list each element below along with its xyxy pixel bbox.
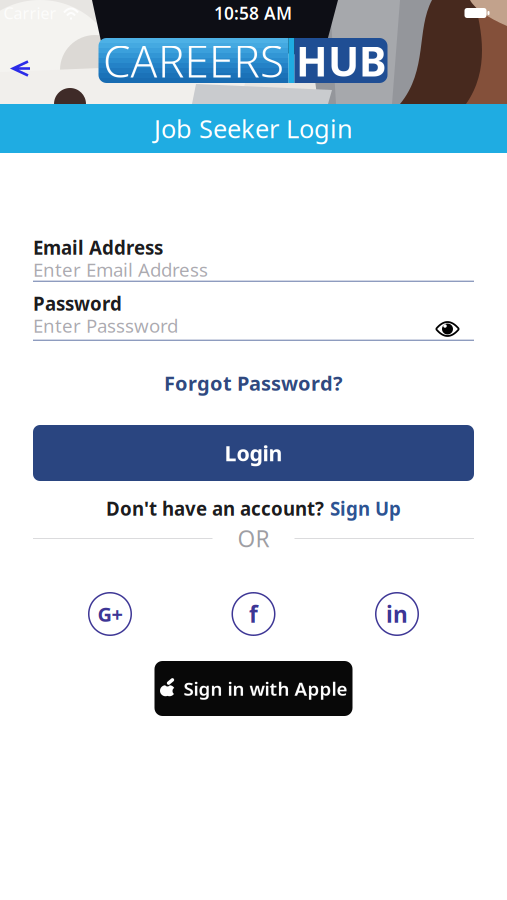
staticText: Carrier xyxy=(3,2,56,24)
staticText: HUB xyxy=(296,33,386,88)
staticText: Sign Up xyxy=(330,496,401,521)
button[interactable]: Sign in with LinkedIn xyxy=(375,592,419,636)
staticText: OR xyxy=(237,523,269,553)
button[interactable]: Forgot Password? xyxy=(164,370,343,396)
staticText: in xyxy=(386,599,408,629)
staticText: 10:58 AM xyxy=(214,1,292,24)
button[interactable]: Show password xyxy=(436,321,459,337)
button[interactable]: Login xyxy=(33,425,474,481)
staticText: G+ xyxy=(97,601,122,627)
staticText: Enter Email Address xyxy=(33,257,208,282)
staticText: Login xyxy=(224,439,282,467)
staticText: Email Address xyxy=(33,235,163,260)
button[interactable]: Sign in with Google xyxy=(88,592,132,636)
button[interactable]: Sign in with Apple xyxy=(154,661,352,716)
staticText: CAREERS xyxy=(103,31,284,90)
staticText: Enter Passsword xyxy=(33,313,178,338)
staticText: Don't have an account? xyxy=(106,496,324,521)
staticText: Forgot Password? xyxy=(164,370,343,396)
staticText: f xyxy=(249,599,258,629)
staticText: Job Seeker Login xyxy=(154,112,353,145)
staticText: Password xyxy=(33,291,122,316)
button[interactable]: Sign in with Facebook xyxy=(231,592,275,636)
staticText: Sign in with Apple xyxy=(183,676,347,701)
button[interactable]: Back xyxy=(3,52,39,84)
button[interactable]: Sign Up xyxy=(330,496,401,521)
